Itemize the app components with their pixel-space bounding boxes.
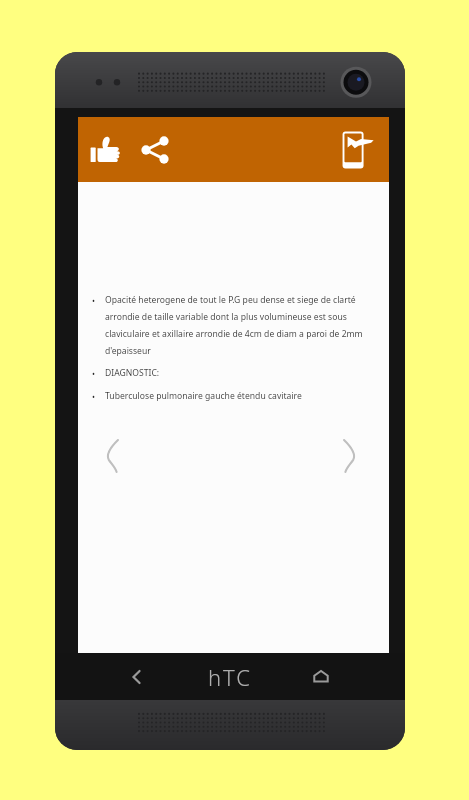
staticText: •	[92, 368, 105, 379]
staticText: •	[92, 391, 105, 402]
button[interactable]: Next	[327, 433, 373, 479]
button[interactable]: Back	[115, 655, 159, 699]
button[interactable]: Share	[132, 127, 178, 173]
button[interactable]: Like	[82, 127, 128, 173]
staticText: hTC	[208, 662, 253, 692]
staticText: Tuberculose pulmonaire gauche étendu cav…	[105, 390, 302, 402]
button[interactable]: Previous	[88, 433, 134, 479]
staticText: •	[92, 295, 105, 306]
staticText: Opacité heterogene de tout le P.G peu de…	[105, 294, 375, 356]
staticText: DIAGNOSTIC:	[105, 367, 160, 379]
button[interactable]: Install app	[331, 125, 381, 175]
button[interactable]: Home	[299, 655, 343, 699]
